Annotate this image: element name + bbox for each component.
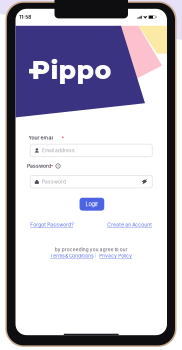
staticText: Privacy Policy (99, 253, 132, 259)
staticText: Login (85, 201, 98, 208)
button[interactable]: Create an Account (107, 222, 152, 228)
staticText: * (51, 164, 54, 170)
staticText: Forgot Password? (30, 222, 73, 228)
staticText: by proceeding you agree to our (55, 247, 128, 252)
staticText: Create an Account (107, 222, 152, 228)
button[interactable]: Privacy Policy (99, 253, 132, 259)
staticText: Email address (42, 147, 75, 153)
staticText: Pippo (31, 55, 111, 85)
button[interactable]: Forgot Password? (30, 222, 73, 228)
button[interactable]: Terms & Conditions (50, 253, 93, 259)
staticText: 11:58 (19, 14, 31, 20)
staticText: Terms & Conditions (50, 253, 93, 259)
staticText: Password (27, 163, 51, 169)
staticText: Your email (28, 135, 53, 141)
staticText: | (95, 253, 97, 259)
button[interactable]: Login (80, 198, 104, 211)
staticText: Password (42, 179, 66, 185)
staticText: * (61, 135, 64, 141)
